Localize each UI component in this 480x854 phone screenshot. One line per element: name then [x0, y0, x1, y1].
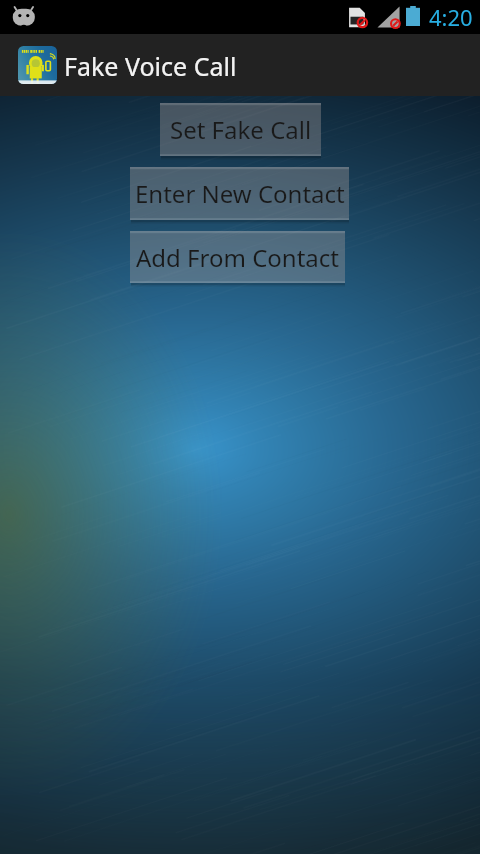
staticText: Set Fake Call [170, 113, 312, 146]
staticText: Add From Contact [136, 241, 340, 274]
staticText: Enter New Contact [135, 177, 345, 210]
staticText: Fake Voice Call [64, 49, 237, 83]
staticText: 4:20 [429, 2, 473, 32]
button[interactable]: Add From Contact [130, 231, 345, 283]
button[interactable]: Set Fake Call [160, 103, 321, 156]
button[interactable]: Enter New Contact [130, 167, 349, 220]
